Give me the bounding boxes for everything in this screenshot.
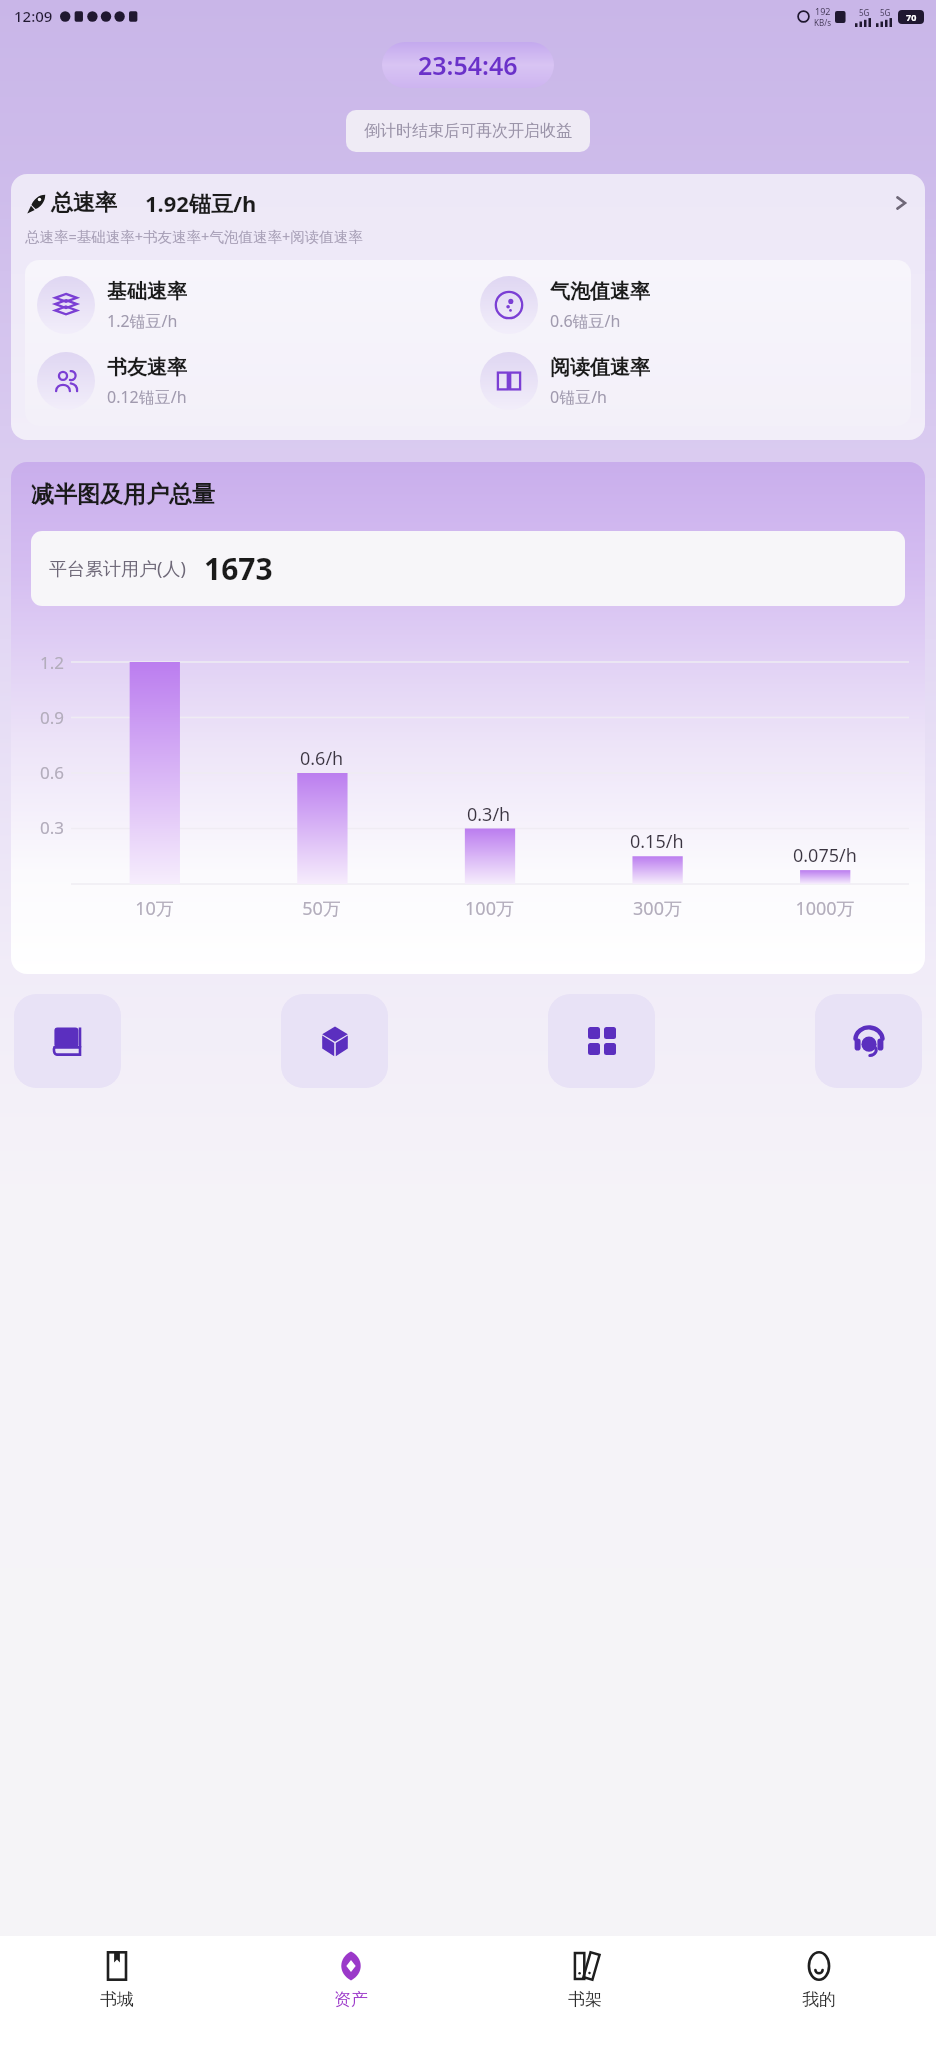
button[interactable]: 平台累计用户(人): [31, 531, 905, 606]
staticText: 70: [906, 11, 917, 23]
staticText: 0.3: [40, 816, 65, 839]
staticText: 基础速率: [107, 279, 187, 304]
staticText: 我的: [802, 1989, 836, 2010]
staticText: 书城: [100, 1989, 134, 2010]
staticText: 300万: [633, 896, 682, 921]
button[interactable]: 气泡值速率: [468, 276, 911, 334]
button[interactable]: 书架: [468, 1936, 702, 2048]
button[interactable]: 阅读值速率: [468, 352, 911, 410]
staticText: 1000万: [795, 896, 855, 921]
staticText: 气泡值速率: [550, 279, 650, 304]
staticText: 资产: [334, 1989, 368, 2010]
staticText: 0.3/h: [467, 802, 511, 827]
staticText: 0.075/h: [793, 843, 857, 868]
staticText: 5G: [880, 7, 891, 18]
button[interactable]: 书城: [14, 994, 121, 1088]
staticText: 23:54:46: [418, 48, 518, 82]
staticText: 0.9: [40, 706, 65, 729]
button[interactable]: 客服: [815, 994, 922, 1088]
staticText: 倒计时结束后可再次开启收益: [364, 121, 572, 141]
staticText: 总速率: [51, 189, 117, 217]
staticText: KB/s: [814, 17, 831, 28]
staticText: 0.12锚豆/h: [107, 386, 187, 408]
button[interactable]: 资产: [234, 1936, 468, 2048]
staticText: 0锚豆/h: [550, 386, 607, 408]
staticText: 50万: [302, 896, 341, 921]
staticText: 0.6锚豆/h: [550, 310, 621, 332]
button[interactable]: 总速率: [25, 188, 911, 218]
button[interactable]: 书城: [0, 1936, 234, 2048]
staticText: 0.6: [40, 761, 65, 784]
staticText: 阅读值速率: [550, 355, 650, 380]
staticText: 12:09: [14, 6, 53, 26]
staticText: 192: [815, 5, 831, 17]
staticText: 1.2: [40, 651, 65, 674]
staticText: 5G: [859, 7, 870, 18]
button[interactable]: 书架: [548, 994, 655, 1088]
staticText: 书友速率: [107, 355, 187, 380]
staticText: 0.15/h: [630, 829, 684, 854]
staticText: 平台累计用户(人): [49, 556, 186, 581]
staticText: 1.92锚豆/h: [145, 188, 257, 218]
button[interactable]: 我的: [702, 1936, 936, 2048]
button[interactable]: 资产包: [281, 994, 388, 1088]
staticText: 减半图及用户总量: [31, 480, 215, 509]
staticText: 总速率=基础速率+书友速率+气泡值速率+阅读值速率: [25, 226, 363, 246]
staticText: 100万: [465, 896, 514, 921]
button[interactable]: 23:54:46: [382, 42, 554, 88]
button[interactable]: 书友速率: [25, 352, 468, 410]
staticText: 0.6/h: [300, 746, 344, 771]
staticText: 10万: [135, 896, 174, 921]
staticText: 书架: [568, 1989, 602, 2010]
staticText: 1673: [204, 548, 273, 589]
button[interactable]: 倒计时结束后可再次开启收益: [346, 110, 590, 152]
button[interactable]: 基础速率: [25, 276, 468, 334]
staticText: 1.2锚豆/h: [107, 310, 178, 332]
